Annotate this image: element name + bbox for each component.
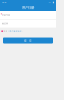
staticText: ıl ▮: [49, 1, 54, 3]
staticText: *: [1, 13, 2, 17]
staticText: 验证码: [2, 22, 8, 25]
staticText: 用户注册: [22, 5, 34, 10]
staticText: 《用户服务协议》: [7, 30, 23, 32]
staticText: 提 交: [24, 39, 32, 42]
staticText: 手机号码: [2, 14, 10, 16]
button[interactable]: 同意: [0, 30, 56, 32]
staticText: 同意: [3, 30, 7, 32]
button[interactable]: 提 交: [3, 37, 53, 43]
staticText: 9:41: [2, 1, 6, 4]
